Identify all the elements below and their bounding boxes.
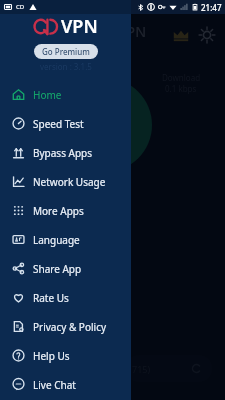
button[interactable]: Premium: [172, 26, 190, 44]
staticText: Home: [33, 88, 62, 102]
button[interactable]: Live Chat: [0, 370, 131, 399]
staticText: VPN: [61, 14, 98, 39]
staticText: Speed Test: [33, 117, 84, 131]
staticText: Share App: [33, 262, 82, 276]
staticText: 21:47: [201, 2, 222, 13]
staticText: Network Usage: [33, 175, 106, 189]
button[interactable]: Rate Us: [0, 283, 131, 312]
staticText: Go Premium: [42, 46, 90, 57]
button[interactable]: Network Usage: [0, 167, 131, 196]
button[interactable]: Bypass Apps: [0, 138, 131, 167]
button[interactable]: Home: [0, 80, 131, 109]
staticText: Help Us: [33, 349, 70, 363]
staticText: Bypass Apps: [33, 146, 93, 160]
button[interactable]: Language: [0, 225, 131, 254]
button[interactable]: Share App: [0, 254, 131, 283]
staticText: Download: [162, 72, 201, 83]
button[interactable]: Speed Test: [0, 109, 131, 138]
button[interactable]: Help Us: [0, 341, 131, 370]
button[interactable]: Theme: [198, 26, 216, 44]
staticText: Live Chat: [33, 378, 76, 392]
staticText: Language: [33, 233, 80, 247]
staticText: Privacy & Policy: [33, 320, 107, 334]
button[interactable]: Connect: [58, 78, 152, 172]
staticText: Rate Us: [33, 291, 69, 305]
staticText: CD: [16, 3, 25, 11]
button[interactable]: Privacy & Policy: [0, 312, 131, 341]
staticText: version : 3.1.5: [40, 61, 92, 72]
staticText: 0.1 kbps: [165, 83, 197, 94]
staticText: More Apps: [33, 204, 84, 218]
button[interactable]: 715): [126, 355, 212, 382]
staticText: VPN: [118, 22, 147, 41]
button[interactable]: More Apps: [0, 196, 131, 225]
button[interactable]: Go Premium: [34, 44, 98, 59]
